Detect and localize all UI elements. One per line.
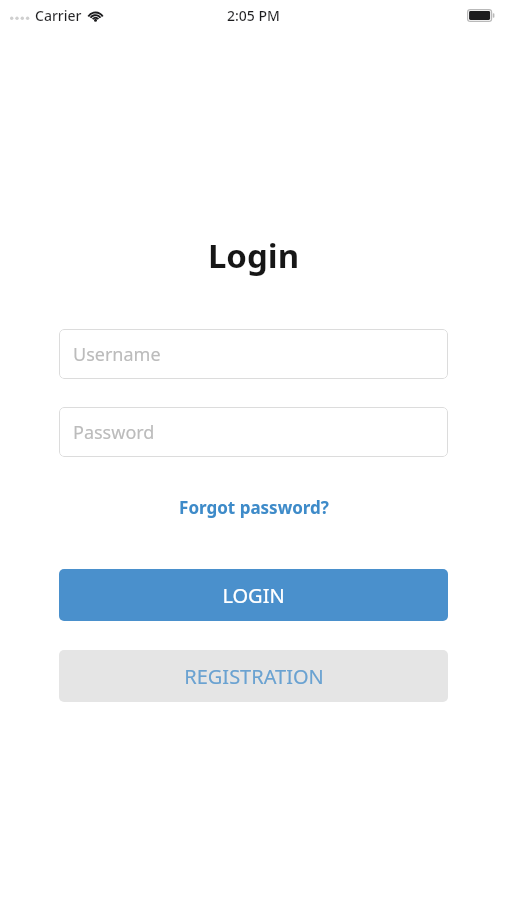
- staticText: Username: [73, 342, 161, 367]
- staticText: Login: [0, 233, 507, 278]
- staticText: Password: [73, 420, 155, 445]
- button[interactable]: REGISTRATION: [59, 650, 448, 702]
- button[interactable]: Password: [59, 407, 448, 457]
- staticText: Forgot password?: [179, 496, 329, 519]
- button[interactable]: Forgot password?: [171, 493, 337, 522]
- staticText: Carrier: [35, 6, 82, 25]
- staticText: REGISTRATION: [184, 663, 324, 690]
- staticText: LOGIN: [222, 582, 285, 609]
- staticText: 2:05 PM: [227, 6, 280, 25]
- button[interactable]: LOGIN: [59, 569, 448, 621]
- button[interactable]: Username: [59, 329, 448, 379]
